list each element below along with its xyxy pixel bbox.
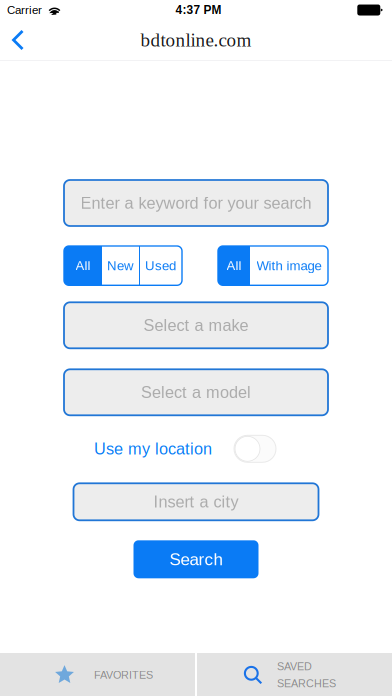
button[interactable]: SAVED	[197, 653, 392, 696]
staticText: Select a make	[143, 316, 248, 334]
button[interactable]: With image	[250, 246, 328, 285]
button[interactable]: Back	[0, 21, 39, 58]
staticText: All	[75, 258, 90, 273]
button[interactable]: Select a model	[64, 369, 328, 415]
staticText: With image	[256, 258, 321, 273]
staticText: FAVORITES	[94, 669, 153, 681]
button[interactable]: Select a make	[64, 302, 328, 348]
staticText: Enter a keyword for your search	[80, 194, 311, 212]
staticText: Insert a city	[153, 493, 238, 511]
staticText: 4:37 PM	[175, 3, 221, 17]
button[interactable]: New	[102, 246, 139, 285]
button[interactable]: Insert a city	[73, 483, 318, 520]
button[interactable]: FAVORITES	[0, 653, 195, 696]
staticText: Carrier	[7, 4, 42, 16]
staticText: Select a model	[141, 383, 251, 401]
staticText: New	[107, 258, 134, 273]
staticText: SAVED	[277, 660, 312, 672]
button[interactable]: Used	[139, 246, 182, 285]
staticText: bdtonline.com	[140, 29, 251, 50]
button[interactable]: All	[218, 246, 250, 285]
button[interactable]: Search	[133, 540, 258, 578]
staticText: All	[226, 258, 241, 273]
staticText: Search	[169, 550, 222, 569]
button[interactable]: Use my location	[234, 435, 276, 462]
staticText: SEARCHES	[277, 677, 336, 690]
staticText: Used	[145, 258, 176, 273]
button[interactable]: All	[64, 246, 102, 285]
button[interactable]: Enter a keyword for your search	[64, 180, 328, 226]
staticText: Use my location	[94, 440, 212, 458]
